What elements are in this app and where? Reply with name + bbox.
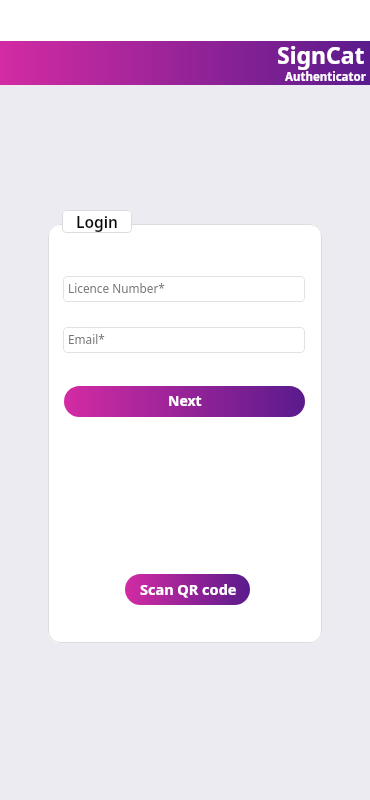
staticText: Login (76, 211, 119, 232)
button[interactable]: Licence Number* (63, 276, 305, 302)
staticText: Email* (68, 331, 105, 347)
staticText: Licence Number* (68, 280, 165, 296)
button[interactable]: Next (64, 386, 305, 417)
button[interactable]: Scan QR code (125, 574, 250, 605)
staticText: Authenticator (285, 69, 366, 85)
staticText: Scan QR code (140, 579, 237, 599)
staticText: SignCat (277, 39, 365, 70)
staticText: Next (168, 391, 202, 410)
button[interactable]: Email* (63, 327, 305, 353)
